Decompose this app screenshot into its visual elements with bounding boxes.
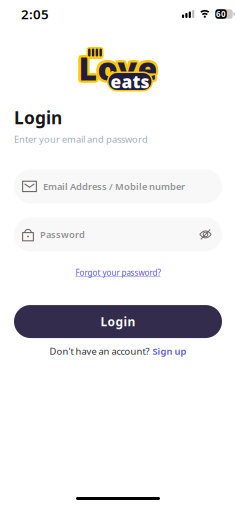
staticText: Love [78,47,157,89]
staticText: Love [78,49,157,92]
staticText: Login [100,314,135,329]
staticText: Love [76,47,155,89]
staticText: Love [80,45,159,87]
button[interactable]: Password [14,217,222,251]
staticText: eats [110,70,149,93]
staticText: Login [14,106,62,129]
staticText: Love [78,44,157,87]
button[interactable]: Login [14,305,222,338]
button[interactable]: Forgot your password? [75,267,160,278]
staticText: Love [81,47,160,89]
staticText: 60 [216,9,226,19]
staticText: Love [77,45,156,87]
staticText: Love [77,49,156,91]
button[interactable]: Sign up [152,345,186,357]
staticText: Email Address / Mobile number [43,180,185,193]
button[interactable]: Email Address / Mobile number [14,169,222,203]
button[interactable]: Show password [199,228,212,241]
staticText: Don't have an account? [49,345,149,357]
staticText: Sign up [152,345,186,357]
staticText: 2:05 [21,5,49,23]
staticText: Love [80,49,159,91]
staticText: Forgot your password? [75,267,160,278]
staticText: Password [40,228,85,241]
staticText: Enter your email and password [14,133,148,145]
